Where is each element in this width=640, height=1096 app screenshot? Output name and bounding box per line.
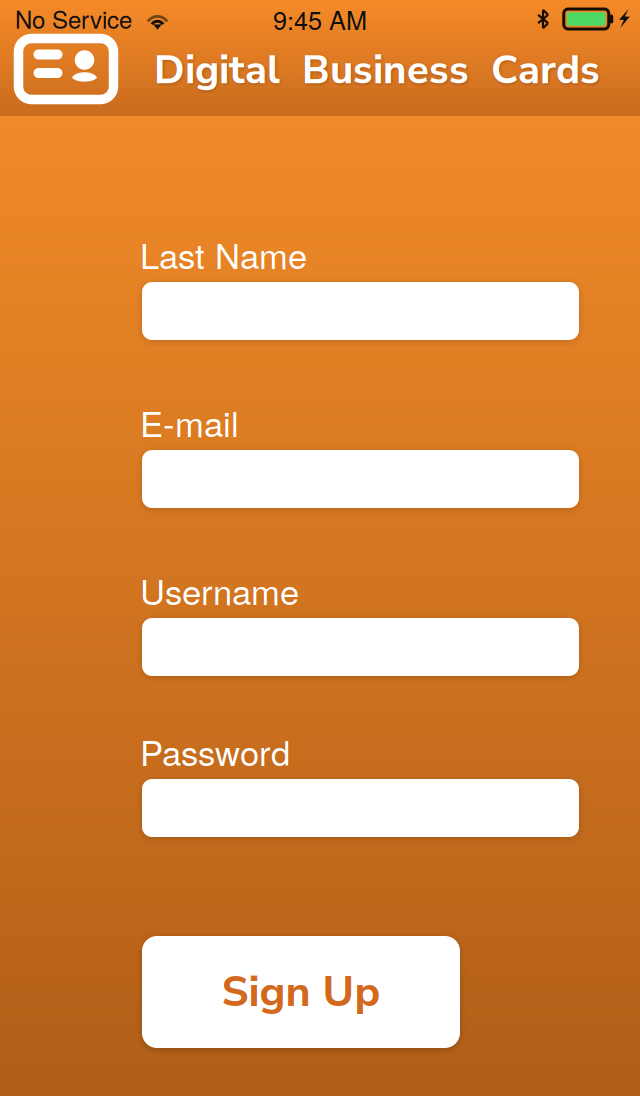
button[interactable]: E-mail	[142, 450, 579, 508]
button[interactable]: Sign Up	[142, 936, 460, 1048]
staticText: Last Name	[140, 229, 307, 279]
staticText: Sign Up	[221, 963, 380, 1021]
button[interactable]: Digital Business Cards	[6, 28, 126, 110]
button[interactable]: Last Name	[142, 282, 579, 340]
staticText: E-mail	[140, 397, 239, 447]
staticText: No Service	[15, 1, 132, 36]
button[interactable]: Password	[142, 779, 579, 837]
staticText: Username	[140, 565, 299, 615]
button[interactable]: Username	[142, 618, 579, 676]
staticText: 9:45 AM	[273, 1, 367, 37]
staticText: Password	[140, 726, 290, 776]
staticText: Digital Business Cards	[154, 43, 600, 97]
